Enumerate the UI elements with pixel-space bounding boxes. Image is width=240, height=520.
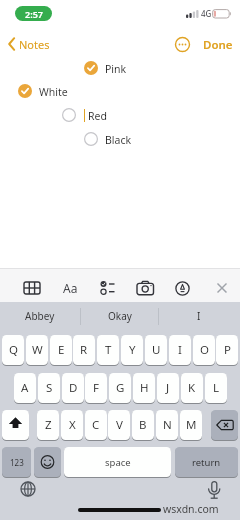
- button[interactable]: D: [62, 373, 84, 403]
- staticText: Aa: [63, 280, 78, 296]
- staticText: 123: [10, 457, 24, 468]
- button[interactable]: J: [157, 373, 179, 403]
- staticText: J: [166, 380, 170, 396]
- staticText: V: [116, 417, 123, 433]
- staticText: Red: [88, 109, 107, 123]
- button[interactable]: T: [97, 335, 119, 365]
- staticText: return: [192, 456, 221, 469]
- staticText: Y: [129, 342, 136, 358]
- button[interactable]: O: [193, 335, 215, 365]
- button[interactable]: Q: [2, 335, 24, 365]
- staticText: Notes: [19, 37, 50, 52]
- staticText: Abbey: [25, 309, 55, 323]
- button[interactable]: U: [145, 335, 167, 365]
- staticText: 4G: [201, 8, 212, 19]
- button[interactable]: Okay: [81, 302, 158, 330]
- button[interactable]: [136, 280, 155, 296]
- staticText: D: [69, 380, 78, 396]
- staticText: Black: [105, 133, 132, 147]
- button[interactable]: M: [180, 410, 202, 440]
- button[interactable]: Done: [200, 35, 236, 54]
- button[interactable]: Notes: [5, 34, 60, 54]
- staticText: White: [39, 85, 68, 99]
- staticText: P: [224, 342, 231, 358]
- button[interactable]: Y: [121, 335, 143, 365]
- button[interactable]: F: [85, 373, 107, 403]
- staticText: F: [93, 380, 99, 396]
- button[interactable]: A: [14, 373, 36, 403]
- button[interactable]: L: [205, 373, 227, 403]
- staticText: 2:57: [25, 8, 43, 20]
- button[interactable]: [2, 410, 29, 440]
- button[interactable]: K: [181, 373, 203, 403]
- staticText: L: [213, 380, 220, 396]
- staticText: space: [105, 456, 131, 469]
- button[interactable]: C: [85, 410, 107, 440]
- staticText: Pink: [105, 62, 127, 76]
- staticText: N: [163, 417, 172, 433]
- button[interactable]: Aa: [61, 279, 80, 297]
- staticText: Q: [9, 342, 18, 358]
- staticText: U: [152, 342, 161, 358]
- button[interactable]: 123: [2, 447, 31, 477]
- staticText: S: [46, 380, 53, 396]
- button[interactable]: return: [175, 447, 238, 477]
- staticText: I: [178, 342, 182, 358]
- button[interactable]: P: [216, 335, 238, 365]
- button[interactable]: [19, 480, 37, 498]
- staticText: Okay: [108, 309, 132, 323]
- button[interactable]: R: [73, 335, 95, 365]
- staticText: X: [69, 417, 76, 433]
- button[interactable]: [215, 281, 229, 295]
- staticText: I: [197, 309, 201, 323]
- staticText: Z: [45, 417, 52, 433]
- button[interactable]: space: [64, 447, 171, 477]
- staticText: W: [32, 342, 43, 358]
- button[interactable]: [22, 280, 42, 296]
- staticText: H: [140, 380, 149, 396]
- button[interactable]: [205, 480, 224, 503]
- button[interactable]: G: [109, 373, 131, 403]
- button[interactable]: [99, 280, 117, 296]
- button[interactable]: E: [50, 335, 72, 365]
- button[interactable]: B: [132, 410, 154, 440]
- staticText: M: [186, 417, 197, 433]
- button[interactable]: Abbey: [0, 302, 80, 330]
- staticText: E: [58, 342, 65, 358]
- staticText: T: [105, 342, 112, 358]
- staticText: G: [116, 380, 125, 396]
- staticText: K: [188, 380, 196, 396]
- staticText: O: [200, 342, 209, 358]
- staticText: R: [80, 342, 88, 358]
- button[interactable]: [175, 281, 190, 296]
- button[interactable]: W: [26, 335, 48, 365]
- staticText: B: [139, 417, 147, 433]
- button[interactable]: S: [38, 373, 60, 403]
- button[interactable]: H: [133, 373, 155, 403]
- button[interactable]: 2:57: [15, 6, 52, 21]
- staticText: A: [21, 380, 29, 396]
- button[interactable]: V: [108, 410, 130, 440]
- button[interactable]: I: [159, 302, 238, 330]
- button[interactable]: I: [169, 335, 191, 365]
- button[interactable]: [211, 410, 238, 440]
- button[interactable]: X: [61, 410, 83, 440]
- staticText: C: [92, 417, 100, 433]
- button[interactable]: N: [156, 410, 178, 440]
- staticText: Done: [203, 37, 233, 53]
- button[interactable]: [174, 36, 191, 53]
- button[interactable]: [34, 447, 61, 477]
- button[interactable]: Z: [37, 410, 59, 440]
- staticText: wsxdn.com: [163, 502, 219, 516]
